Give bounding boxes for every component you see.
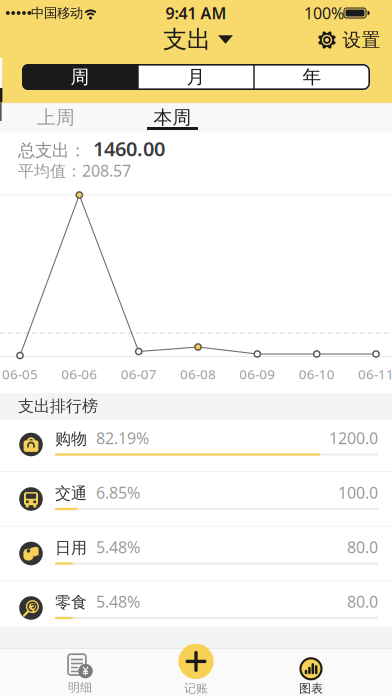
staticText: 设置 [342, 28, 380, 51]
button[interactable]: 图表 [261, 649, 361, 696]
staticText: 零食 [55, 593, 87, 612]
staticText: 9:41 AM [165, 2, 226, 24]
button[interactable]: 本周 [122, 103, 222, 132]
staticText: 日用 [55, 538, 87, 558]
staticText: 100% [304, 2, 344, 24]
button[interactable]: 记账 [146, 649, 246, 696]
staticText: 06-10 [299, 365, 335, 383]
button[interactable]: 月 [139, 64, 253, 90]
staticText: 5.48% [96, 536, 140, 558]
button[interactable]: 年 [255, 64, 369, 90]
button[interactable]: 明细 [30, 649, 130, 696]
staticText: 图表 [299, 681, 323, 696]
staticText: 总支出： [18, 140, 86, 161]
staticText: 1200.0 [329, 427, 378, 449]
button[interactable]: 支出 [163, 25, 233, 54]
staticText: 上周 [37, 106, 75, 129]
button[interactable]: 购物 [0, 419, 392, 474]
staticText: 明细 [68, 680, 92, 695]
staticText: 06-05 [2, 365, 38, 383]
button[interactable]: 设置 [317, 28, 380, 51]
staticText: 记账 [184, 681, 208, 696]
staticText: 交通 [55, 484, 87, 503]
staticText: 支出排行榜 [18, 396, 98, 416]
button[interactable]: 零食 [0, 583, 392, 637]
staticText: 月 [186, 65, 205, 88]
staticText: 06-06 [61, 365, 97, 383]
button[interactable]: 上周 [6, 103, 106, 132]
staticText: 06-07 [121, 365, 157, 383]
button[interactable]: 日用 [0, 528, 392, 583]
staticText: 82.19% [96, 427, 149, 449]
staticText: 年 [302, 65, 321, 88]
staticText: 06-11 [358, 365, 392, 383]
button[interactable]: 交通 [0, 474, 392, 528]
staticText: 06-09 [239, 365, 275, 383]
staticText: 本周 [153, 106, 191, 129]
staticText: 100.0 [338, 482, 378, 503]
staticText: 5.48% [96, 591, 140, 612]
staticText: 06-08 [180, 365, 216, 383]
staticText: 6.85% [96, 482, 140, 503]
staticText: 支出 [163, 25, 211, 54]
button[interactable]: 周 [23, 64, 137, 90]
staticText: 1460.00 [93, 135, 165, 162]
staticText: 80.0 [347, 591, 378, 612]
staticText: 80.0 [347, 536, 378, 558]
staticText: 周 [70, 65, 89, 88]
staticText: 购物 [55, 429, 87, 449]
staticText: 中国移动 [31, 5, 83, 21]
staticText: 平均值：208.57 [18, 160, 131, 181]
